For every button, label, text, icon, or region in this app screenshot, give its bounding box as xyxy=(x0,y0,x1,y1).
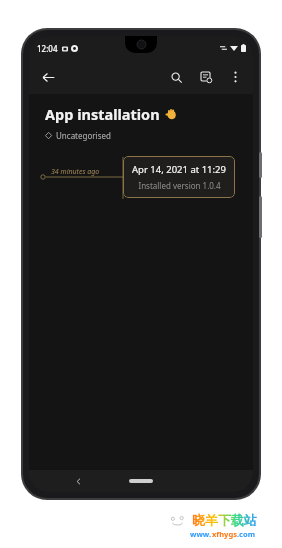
staticText: App installation xyxy=(45,104,160,124)
staticText: Uncategorised xyxy=(56,130,111,141)
button[interactable]: Back xyxy=(69,472,87,490)
staticText: 34 minutes ago xyxy=(51,167,100,177)
button[interactable]: Search xyxy=(162,63,190,91)
button[interactable]: History xyxy=(192,63,220,91)
staticText: .com xyxy=(237,529,255,539)
staticText: 12:04 xyxy=(37,43,58,54)
button[interactable]: Apr 14, 2021 at 11:29 xyxy=(123,156,235,198)
button[interactable]: Home xyxy=(129,479,153,483)
button[interactable]: More options xyxy=(221,63,249,91)
staticText: Installed version 1.0.4 xyxy=(138,180,221,191)
button[interactable]: Back xyxy=(33,62,63,92)
staticText: Apr 14, 2021 at 11:29 xyxy=(132,163,226,176)
staticText: xfhygs xyxy=(212,529,237,539)
staticText: www. xyxy=(190,529,212,539)
staticText: 晓羊下载站 xyxy=(192,512,257,528)
